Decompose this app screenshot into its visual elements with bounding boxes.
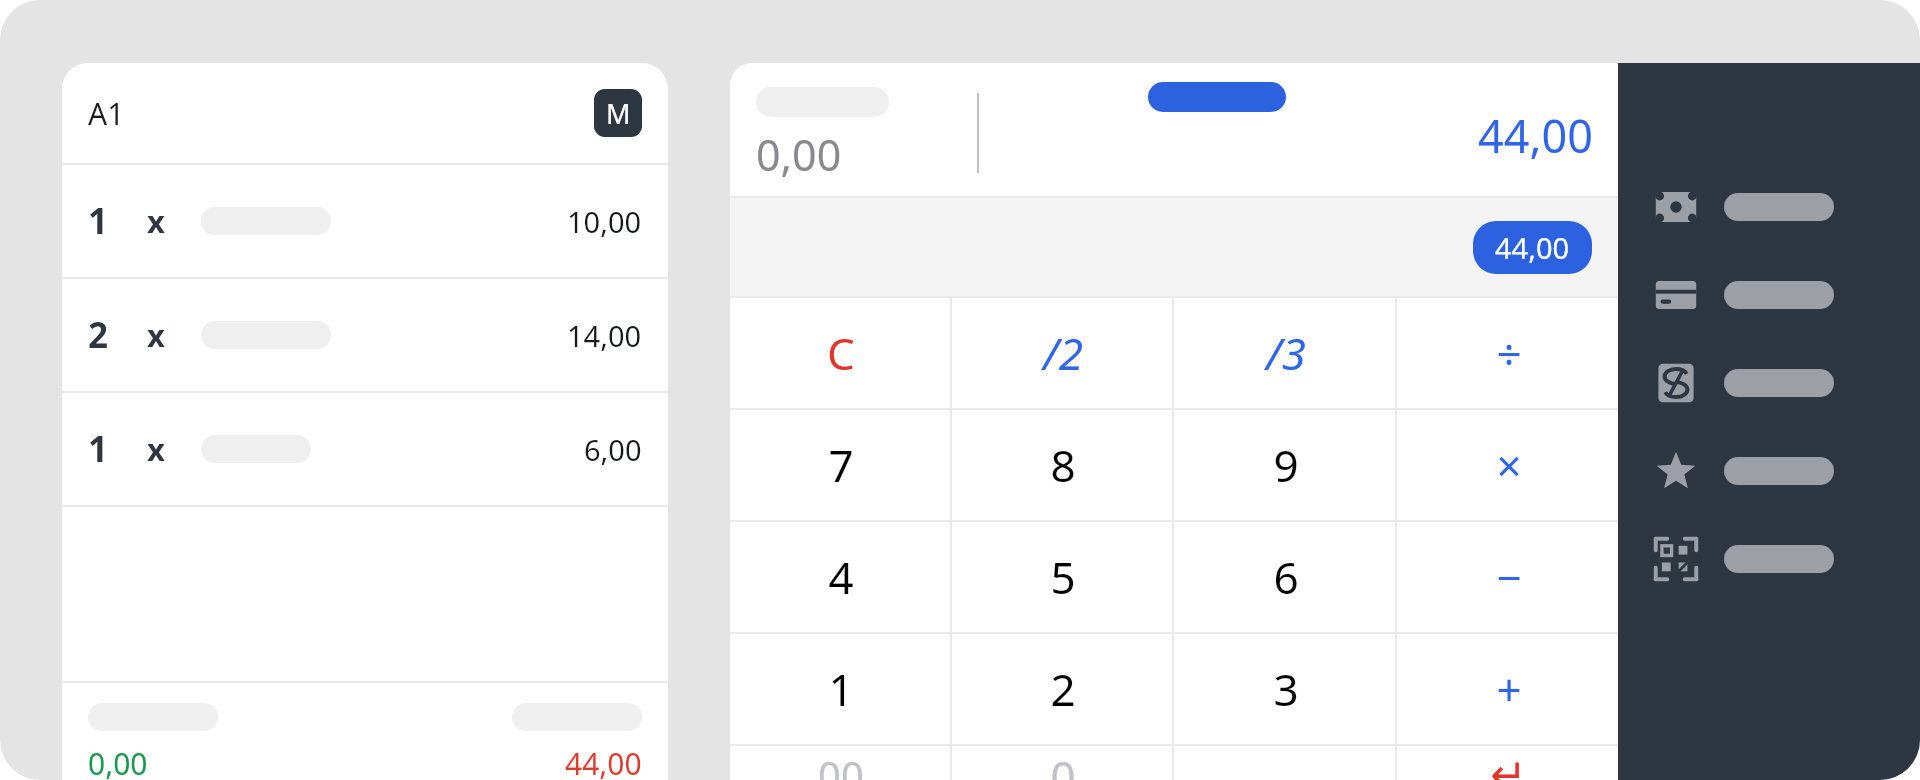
staticText: 7 xyxy=(828,435,854,495)
button[interactable]: 44,00 xyxy=(1473,221,1592,274)
staticText: 8 xyxy=(1050,435,1076,495)
button[interactable]: ↵ xyxy=(1397,746,1620,780)
button[interactable]: Menu xyxy=(594,89,642,137)
staticText: A1 xyxy=(88,93,125,134)
staticText: x xyxy=(147,200,165,242)
button[interactable]: Scan xyxy=(1618,523,1920,595)
button[interactable]: 2 xyxy=(952,634,1174,744)
staticText: /2 xyxy=(1043,323,1083,383)
button[interactable]: Card xyxy=(1618,259,1920,331)
button[interactable]: Cash xyxy=(1618,171,1920,243)
button[interactable]: C xyxy=(730,298,952,408)
button[interactable]: + xyxy=(1397,634,1620,744)
staticText: 9 xyxy=(1273,435,1299,495)
staticText: 44,00 xyxy=(565,743,642,780)
staticText: /3 xyxy=(1266,323,1306,383)
staticText: ↵ xyxy=(1490,749,1527,780)
button[interactable]: 2 xyxy=(62,279,668,391)
staticText: 44,00 xyxy=(1478,105,1594,166)
button[interactable]: Discount xyxy=(1618,347,1920,419)
staticText: − xyxy=(1496,547,1522,607)
staticText: x xyxy=(147,428,165,470)
staticText: x xyxy=(147,314,165,356)
staticText: 44,00 xyxy=(1495,228,1570,267)
button[interactable]: 1 xyxy=(62,165,668,277)
button[interactable]: 9 xyxy=(1174,410,1397,520)
button[interactable]: 0 xyxy=(952,746,1174,780)
staticText: 0,00 xyxy=(756,125,842,184)
staticText: 2 xyxy=(1050,659,1076,719)
staticText: 5 xyxy=(1050,547,1076,607)
button[interactable]: 4 xyxy=(730,522,952,632)
button[interactable]: /3 xyxy=(1174,298,1397,408)
button[interactable]: 7 xyxy=(730,410,952,520)
staticText: M xyxy=(606,95,631,132)
button[interactable]: − xyxy=(1397,522,1620,632)
staticText: 1 xyxy=(88,197,109,245)
staticText: 4 xyxy=(828,547,854,607)
button[interactable]: 8 xyxy=(952,410,1174,520)
button[interactable]: 1 xyxy=(62,393,668,505)
button[interactable]: 1 xyxy=(730,634,952,744)
staticText: 10,00 xyxy=(567,202,642,241)
staticText: 0,00 xyxy=(88,743,148,780)
staticText: 0 xyxy=(1050,746,1076,780)
staticText: + xyxy=(1496,659,1522,719)
staticText: 6 xyxy=(1273,547,1299,607)
staticText: 2 xyxy=(88,311,109,359)
button[interactable]: × xyxy=(1397,410,1620,520)
staticText: 1 xyxy=(828,659,854,719)
button[interactable]: 5 xyxy=(952,522,1174,632)
button[interactable]: ÷ xyxy=(1397,298,1620,408)
button[interactable]: 3 xyxy=(1174,634,1397,744)
staticText: 6,00 xyxy=(584,430,642,469)
button[interactable]: Favourite xyxy=(1618,435,1920,507)
button[interactable]: 00 xyxy=(730,746,952,780)
staticText: × xyxy=(1496,435,1522,495)
staticText: 1 xyxy=(88,425,109,473)
button[interactable]: 6 xyxy=(1174,522,1397,632)
button[interactable]: A1 xyxy=(62,63,668,163)
staticText: 3 xyxy=(1273,659,1299,719)
staticText: 14,00 xyxy=(567,316,642,355)
button[interactable] xyxy=(1148,82,1286,112)
staticText: ÷ xyxy=(1496,323,1522,383)
button[interactable]: /2 xyxy=(952,298,1174,408)
staticText: 00 xyxy=(818,748,864,780)
button[interactable]: 0,00 xyxy=(62,683,668,780)
staticText: C xyxy=(827,323,855,383)
